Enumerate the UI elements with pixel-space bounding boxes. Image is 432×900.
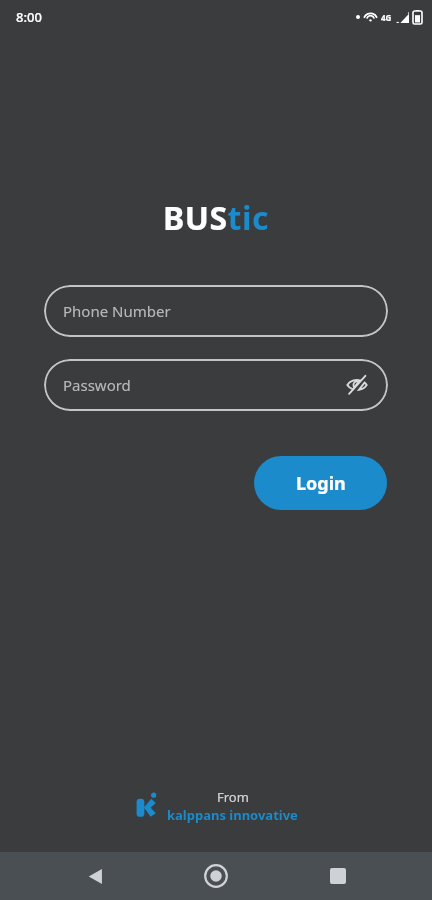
- button[interactable]: Phone Number: [44, 285, 388, 337]
- button[interactable]: Back: [68, 852, 122, 900]
- staticText: Login: [296, 471, 346, 496]
- button[interactable]: Password: [44, 359, 388, 411]
- staticText: 8:00: [16, 8, 42, 26]
- staticText: From: [217, 788, 249, 806]
- staticText: Password: [63, 375, 131, 395]
- button[interactable]: Login: [254, 456, 387, 510]
- staticText: Phone Number: [63, 301, 171, 321]
- button[interactable]: Show password: [342, 370, 372, 400]
- staticText: 4G: [381, 12, 392, 23]
- staticText: BUStic: [163, 196, 270, 240]
- staticText: kalppans innovative: [167, 806, 298, 824]
- button[interactable]: Home: [189, 852, 243, 900]
- button[interactable]: Recent apps: [311, 852, 365, 900]
